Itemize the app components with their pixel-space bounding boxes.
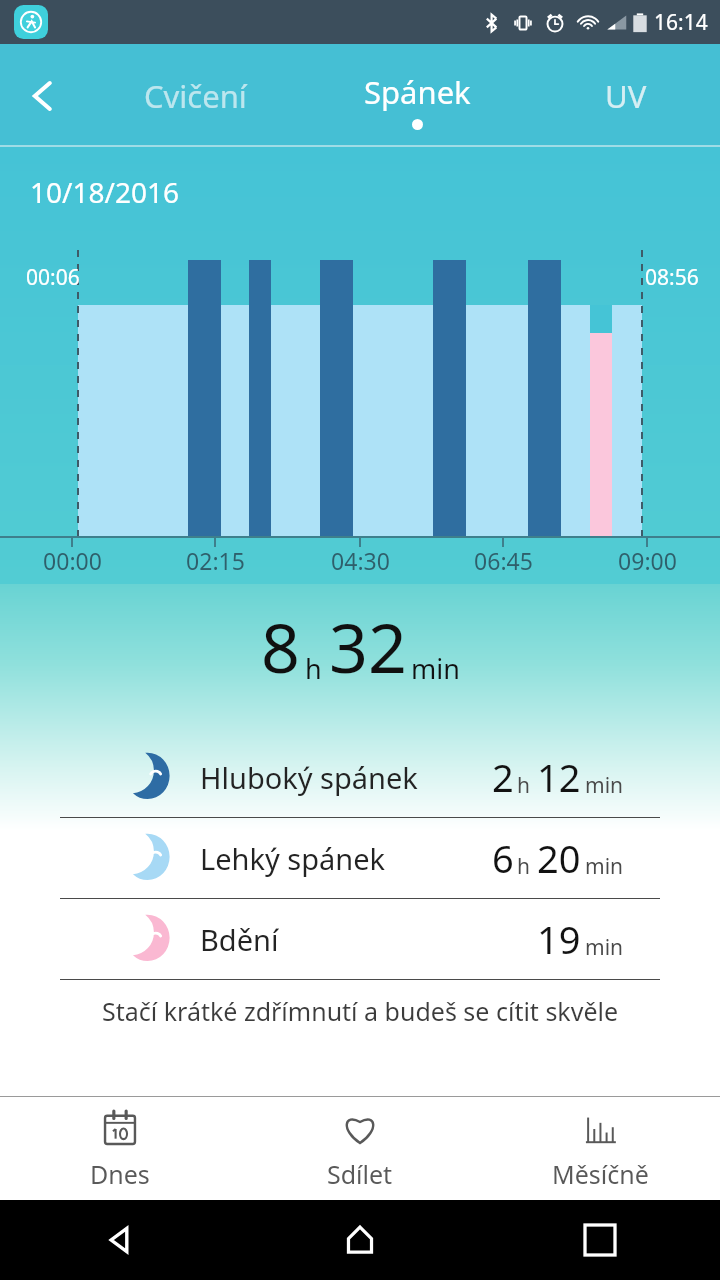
staticText: Sdílet bbox=[327, 1157, 393, 1191]
staticText: 12 bbox=[537, 751, 581, 803]
button[interactable]: UV bbox=[531, 44, 720, 147]
staticText: 8 bbox=[261, 600, 300, 693]
button[interactable]: Home bbox=[240, 1200, 480, 1280]
staticText: h bbox=[305, 650, 322, 687]
staticText: 19 bbox=[537, 913, 581, 965]
staticText: Spánek bbox=[364, 71, 471, 113]
button[interactable]: Cvičení bbox=[86, 44, 304, 147]
staticText: 00:00 bbox=[43, 545, 102, 576]
staticText: Měsíčně bbox=[552, 1157, 649, 1191]
staticText: min bbox=[585, 852, 624, 881]
staticText: 20 bbox=[537, 832, 581, 884]
button[interactable]: Dnes bbox=[0, 1097, 240, 1200]
staticText: 00:06 bbox=[26, 263, 80, 292]
button[interactable]: Recents bbox=[480, 1200, 720, 1280]
staticText: 08:56 bbox=[645, 263, 699, 292]
button[interactable]: Měsíčně bbox=[480, 1097, 720, 1200]
button[interactable]: Lehký spánek bbox=[0, 818, 720, 898]
staticText: 16:14 bbox=[654, 8, 708, 37]
button[interactable]: Bdění bbox=[0, 899, 720, 979]
staticText: Hluboký spánek bbox=[200, 758, 418, 797]
staticText: Dnes bbox=[90, 1157, 150, 1191]
staticText: 02:15 bbox=[186, 545, 245, 576]
staticText: min bbox=[411, 650, 460, 687]
staticText: 2 bbox=[492, 751, 514, 803]
button[interactable]: Back bbox=[0, 1200, 240, 1280]
button[interactable]: Hluboký spánek bbox=[0, 737, 720, 817]
staticText: 6 bbox=[492, 832, 514, 884]
staticText: 09:00 bbox=[618, 545, 677, 576]
staticText: 32 bbox=[329, 600, 407, 693]
staticText: Stačí krátké zdřímnutí a budeš se cítit … bbox=[102, 994, 619, 1025]
button[interactable]: Back bbox=[0, 44, 86, 147]
staticText: min bbox=[585, 771, 624, 800]
button[interactable]: Spánek bbox=[304, 44, 531, 147]
staticText: 10/18/2016 bbox=[30, 173, 179, 211]
staticText: UV bbox=[605, 75, 647, 117]
staticText: h bbox=[517, 852, 530, 881]
staticText: 06:45 bbox=[474, 545, 533, 576]
staticText: Bdění bbox=[200, 920, 279, 959]
staticText: Cvičení bbox=[144, 75, 247, 117]
staticText: Lehký spánek bbox=[200, 839, 386, 878]
button[interactable]: Sdílet bbox=[240, 1097, 480, 1200]
staticText: min bbox=[585, 933, 624, 962]
staticText: h bbox=[517, 771, 530, 800]
staticText: 04:30 bbox=[331, 545, 390, 576]
